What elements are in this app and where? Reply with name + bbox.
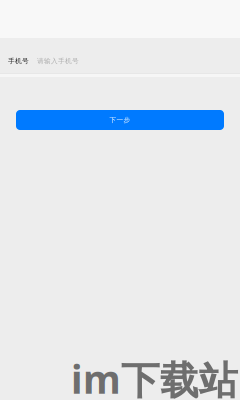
staticText: 请输入手机号 <box>37 57 79 65</box>
staticText: im下载站 <box>71 353 238 400</box>
button[interactable]: 下一步 <box>16 110 224 130</box>
staticText: 下一步 <box>109 116 130 124</box>
staticText: 手机号 <box>8 57 29 65</box>
